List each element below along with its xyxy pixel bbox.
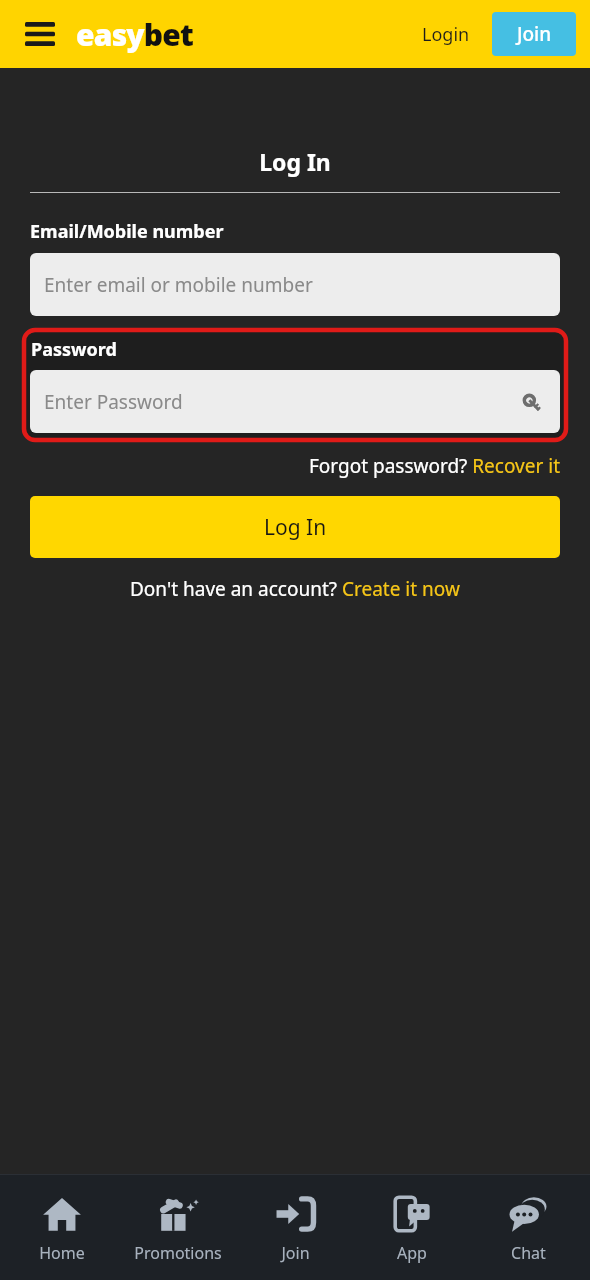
staticText: Forgot password? Recover it [309,453,560,479]
button[interactable]: Enter Password [30,370,560,433]
staticText: Password [31,337,117,362]
button[interactable]: Join [492,12,576,56]
button[interactable]: Forgot password? Recover it [309,453,560,479]
staticText: easybet [76,14,194,55]
button[interactable]: Show password [516,387,546,417]
staticText: Log In [0,146,590,177]
staticText: Enter Password [44,389,183,415]
staticText: App [397,1242,427,1264]
staticText: Email/Mobile number [30,219,224,244]
button[interactable]: Join [240,1186,350,1270]
button[interactable]: Don't have an account? Create it now [130,576,460,602]
staticText: Join [281,1242,310,1264]
staticText: Don't have an account? Create it now [130,576,460,602]
button[interactable]: App [357,1186,467,1270]
staticText: Enter email or mobile number [44,272,313,298]
staticText: Log In [264,513,327,542]
button[interactable]: Log In [30,496,560,558]
staticText: Join [517,21,552,47]
button[interactable]: Chat [473,1186,583,1270]
button[interactable]: Menu [18,12,62,56]
button[interactable]: Home [7,1186,117,1270]
button[interactable]: Enter email or mobile number [30,253,560,316]
staticText: Chat [511,1242,546,1264]
button[interactable]: Login [412,14,480,55]
staticText: Promotions [134,1242,222,1264]
staticText: Home [39,1242,85,1264]
button[interactable]: Promotions [123,1186,233,1270]
staticText: Login [422,22,470,47]
